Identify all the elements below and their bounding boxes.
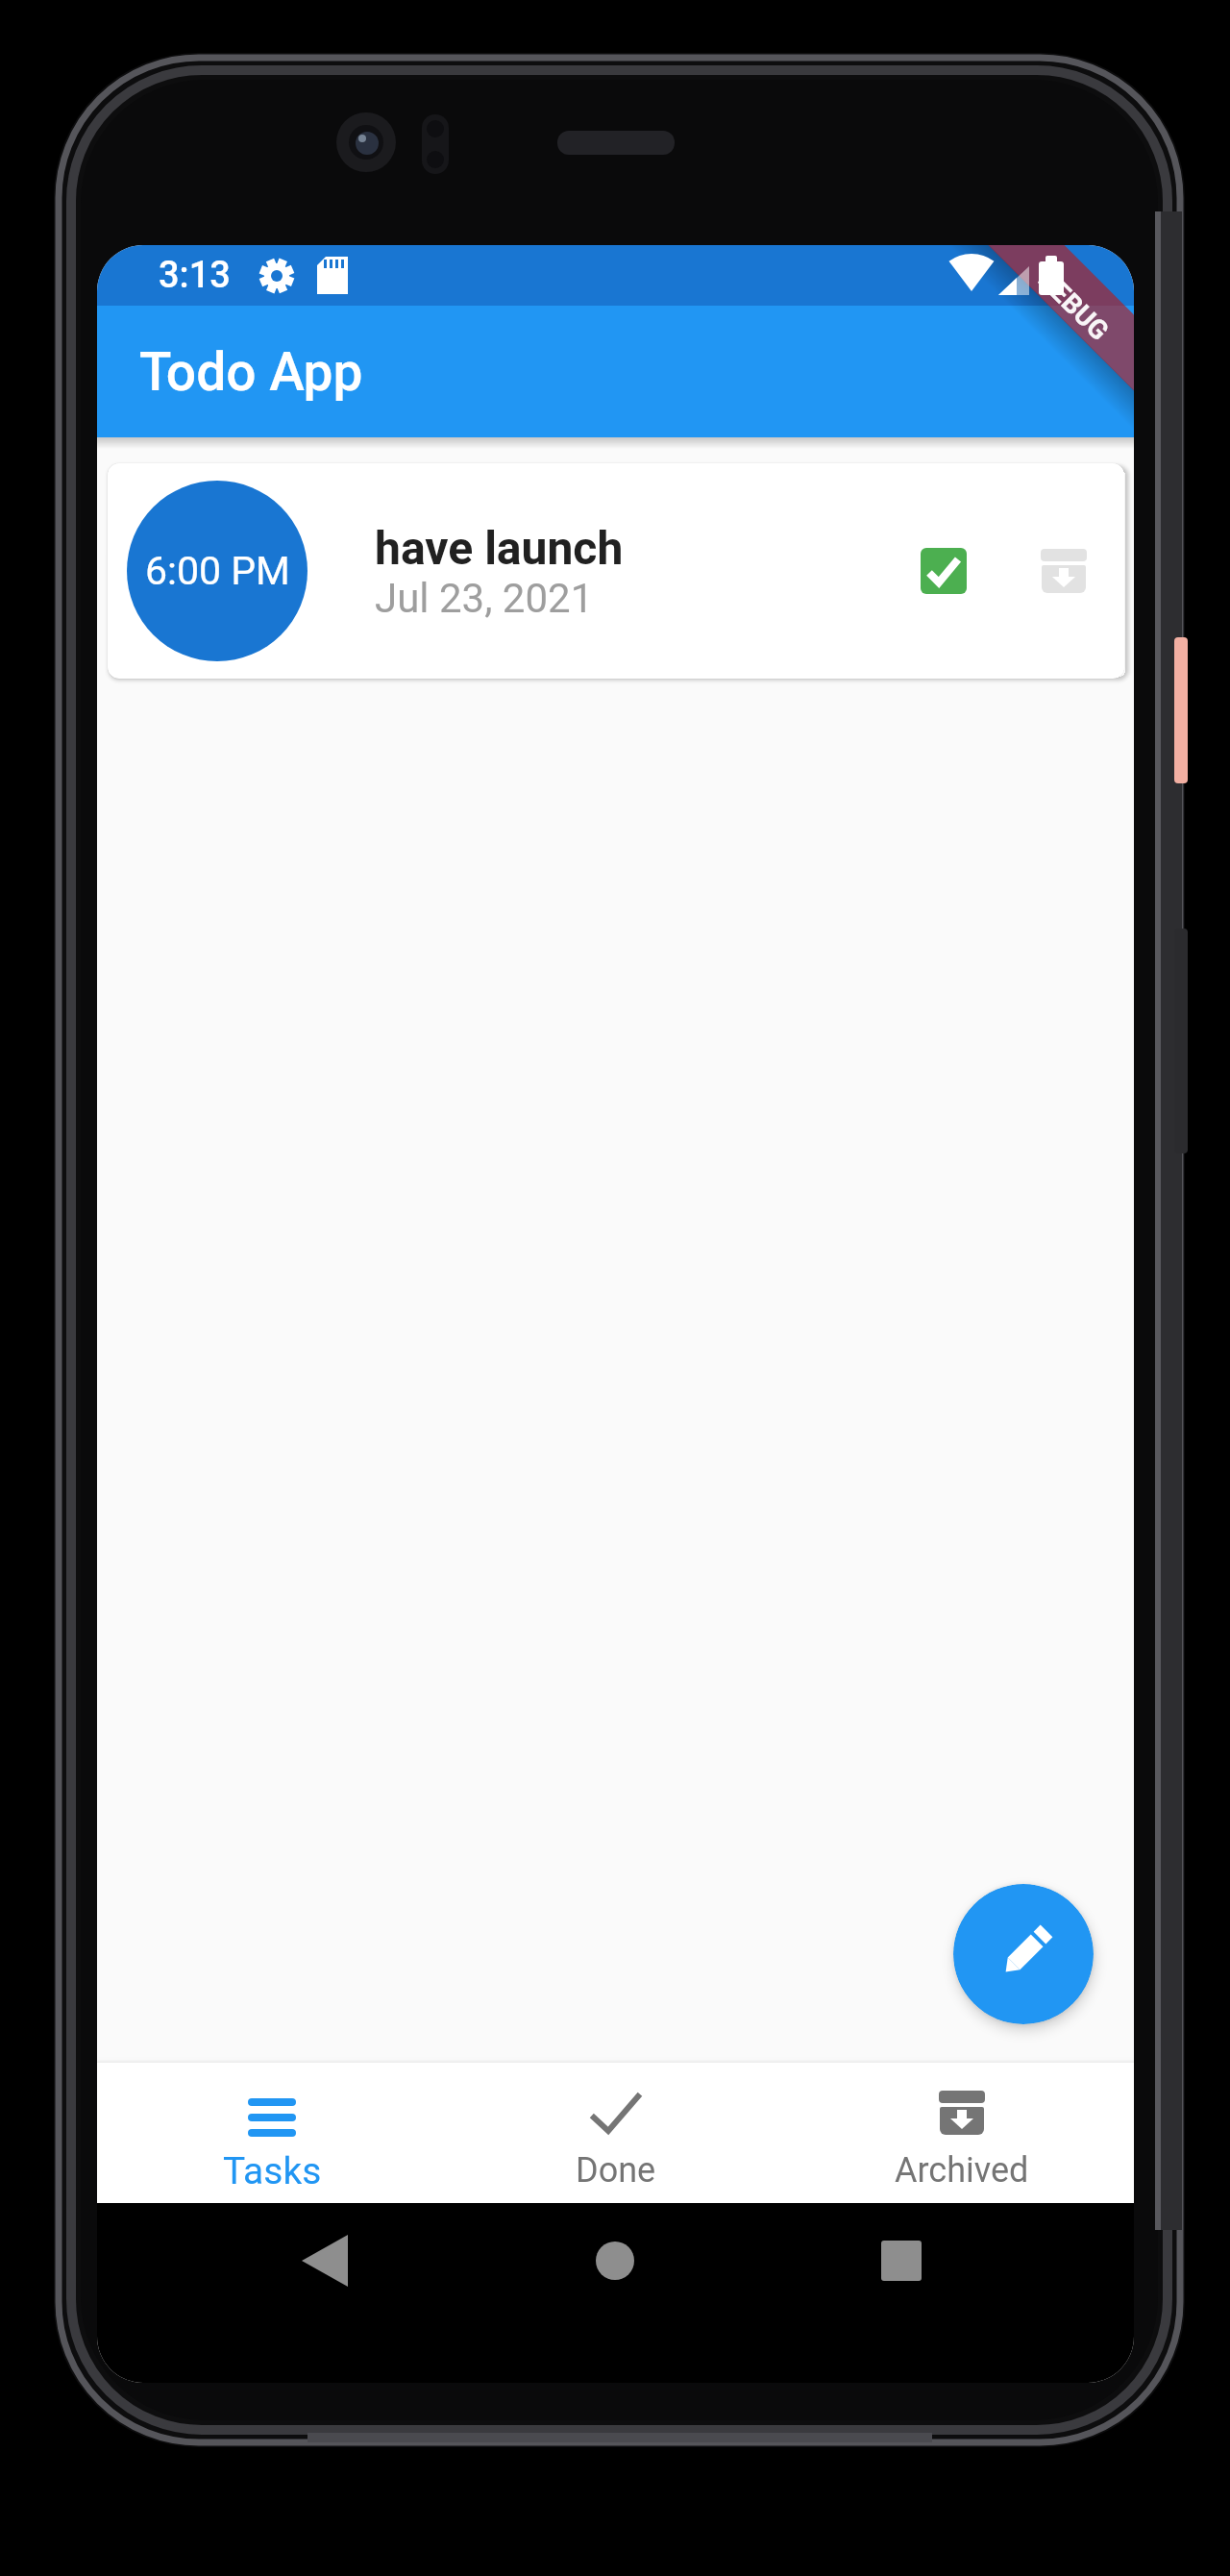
staticText: Todo App (139, 341, 363, 403)
button[interactable] (268, 2227, 383, 2294)
staticText: Done (576, 2150, 656, 2191)
button[interactable] (844, 2227, 959, 2294)
staticText: Archived (895, 2150, 1029, 2191)
staticText: Tasks (223, 2149, 322, 2193)
staticText: DEBUG (1032, 264, 1115, 347)
staticText: have launch (375, 521, 624, 575)
staticText: Jul 23, 2021 (375, 575, 594, 622)
button[interactable] (557, 2227, 673, 2294)
staticText: 3:13 (159, 254, 231, 297)
button[interactable]: Done (491, 2063, 741, 2203)
button[interactable] (1041, 548, 1087, 594)
button[interactable] (953, 1884, 1094, 2024)
button[interactable]: 6:00 PM (108, 463, 1124, 679)
staticText: 6:00 PM (145, 548, 290, 594)
button[interactable]: Archived (837, 2063, 1087, 2203)
button[interactable]: Tasks (147, 2063, 397, 2203)
button[interactable] (921, 548, 967, 594)
